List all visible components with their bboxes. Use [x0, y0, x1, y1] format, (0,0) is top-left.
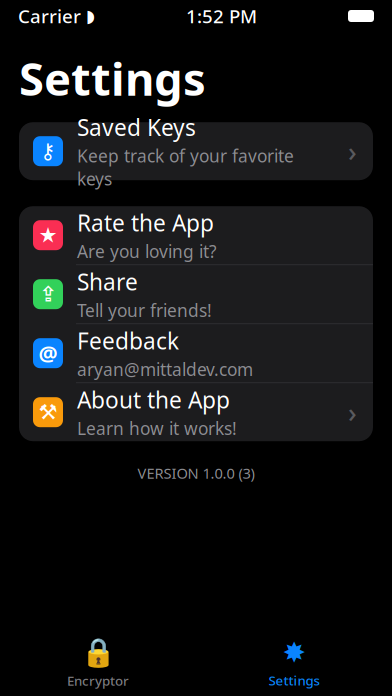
staticText: Settings: [268, 671, 319, 689]
staticText: VERSION 1.0.0 (3): [137, 463, 254, 483]
staticText: Share: [77, 267, 138, 297]
staticText: 1:52 PM: [186, 4, 257, 28]
staticText: 🔒: [80, 637, 115, 669]
staticText: @: [38, 339, 57, 367]
button[interactable]: ⚒: [19, 383, 373, 441]
button[interactable]: @: [19, 324, 373, 382]
staticText: About the App: [77, 385, 230, 415]
button[interactable]: ⇪: [19, 265, 373, 323]
staticText: Settings: [19, 48, 206, 108]
staticText: aryan@mittaldev.com: [77, 358, 253, 381]
staticText: ⇪: [39, 282, 57, 306]
staticText: ✸: [282, 637, 305, 669]
button[interactable]: ⚷: [19, 122, 373, 180]
staticText: Tell your friends!: [77, 299, 212, 322]
button[interactable]: ✸: [196, 631, 392, 695]
staticText: Rate the App: [77, 208, 214, 238]
staticText: Carrier: [18, 4, 81, 28]
staticText: ⚒: [38, 400, 57, 424]
staticText: ★: [38, 223, 57, 247]
staticText: Encryptor: [67, 672, 129, 689]
button[interactable]: 🔒: [0, 631, 196, 695]
button[interactable]: ★: [19, 206, 373, 264]
staticText: ⚷: [40, 139, 56, 163]
staticText: ›: [348, 394, 357, 430]
staticText: Keep track of your favorite keys: [77, 144, 294, 190]
staticText: ›: [348, 133, 357, 169]
staticText: Feedback: [77, 326, 179, 356]
staticText: ◗: [86, 6, 95, 26]
staticText: Are you loving it?: [77, 240, 217, 263]
staticText: Learn how it works!: [77, 417, 237, 440]
staticText: Saved Keys: [77, 112, 196, 142]
